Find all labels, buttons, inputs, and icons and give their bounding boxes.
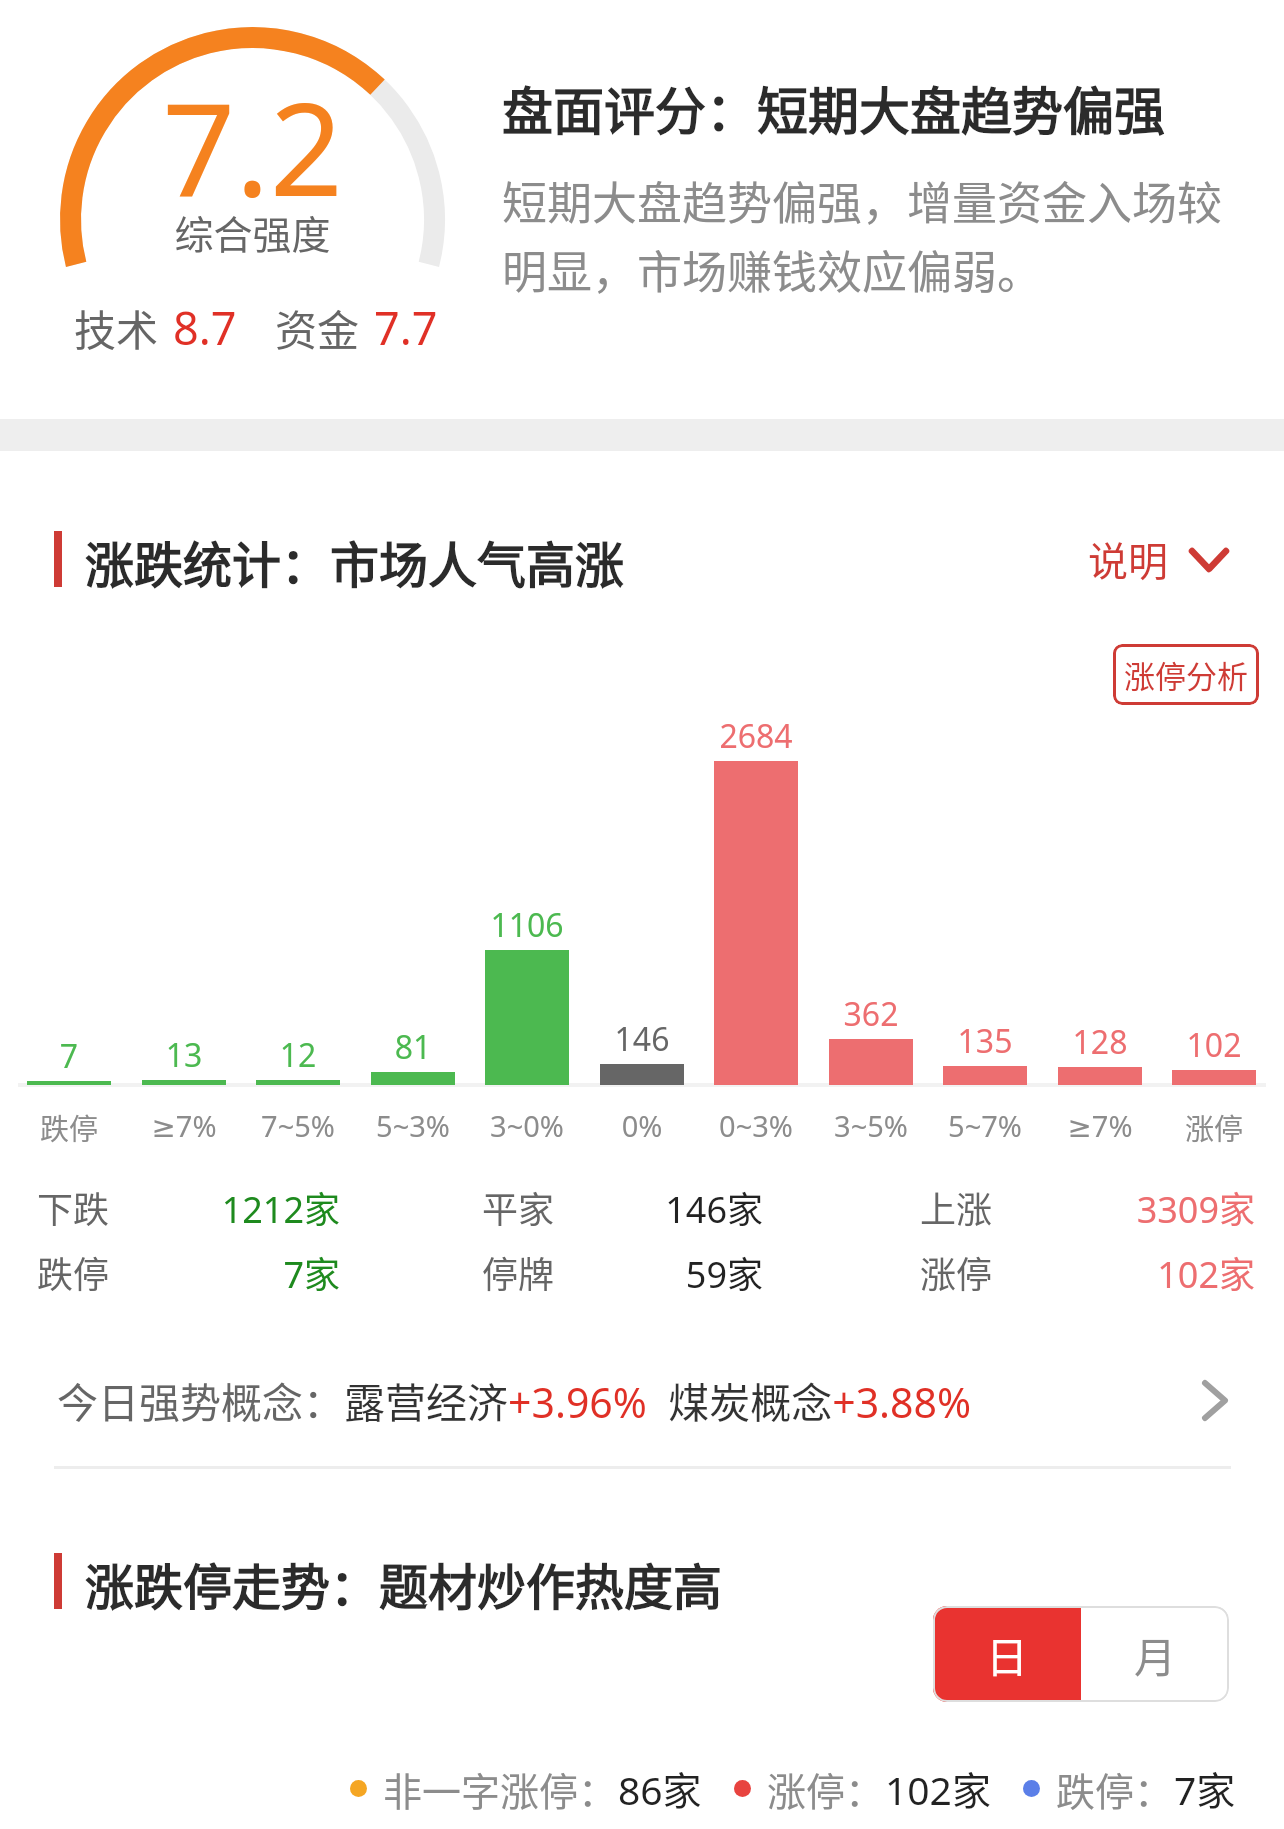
staticText: 102 <box>1142 1023 1284 1067</box>
staticText: 8.7 <box>173 297 237 358</box>
staticText: 涨停 <box>1142 1106 1284 1148</box>
staticText: 128 <box>1028 1020 1172 1064</box>
staticText: 13 <box>112 1033 256 1077</box>
staticText: 1106 <box>455 903 599 947</box>
staticText: 今日强势概念：露营经济+3.96% 煤炭概念+3.88% <box>57 1370 972 1430</box>
staticText: 2684 <box>684 714 828 758</box>
staticText: 综合强度 <box>60 204 445 260</box>
staticText: 说明 <box>1088 530 1168 588</box>
staticText: 月 <box>1134 1624 1177 1685</box>
staticText: 81 <box>341 1025 485 1069</box>
staticText: 短期大盘趋势偏强，增量资金入场较明显，市场赚钱效应偏弱。 <box>502 168 1242 302</box>
staticText: ≥7% <box>1028 1106 1172 1145</box>
staticText: 涨跌统计：市场人气高涨 <box>85 526 625 597</box>
staticText: 涨停 <box>920 1246 993 1298</box>
staticText: 7~5% <box>226 1106 370 1145</box>
staticText: 停牌 <box>482 1246 555 1298</box>
staticText: 86家 <box>618 1760 702 1817</box>
staticText: 362 <box>799 992 943 1036</box>
staticText: 146 <box>570 1017 714 1061</box>
staticText: 日 <box>986 1624 1029 1685</box>
button[interactable]: 今日强势概念：露营经济+3.96% 煤炭概念+3.88% <box>0 1344 1284 1456</box>
staticText: 0~3% <box>684 1106 828 1145</box>
other: 展开说明 <box>1188 528 1230 590</box>
staticText: 涨停： <box>767 1761 885 1817</box>
staticText: 1212家 <box>140 1181 340 1233</box>
staticText: 涨跌停走势：题材炒作热度高 <box>85 1548 723 1619</box>
staticText: 135 <box>913 1019 1057 1063</box>
staticText: ≥7% <box>112 1106 256 1145</box>
staticText: 146家 <box>600 1181 763 1233</box>
staticText: 跌停 <box>37 1246 110 1298</box>
staticText: 5~7% <box>913 1106 1057 1145</box>
staticText: 0% <box>570 1106 714 1145</box>
other: 查看更多概念 <box>1202 1380 1228 1421</box>
staticText: 7.7 <box>374 297 438 358</box>
staticText: 7家 <box>1174 1760 1236 1817</box>
staticText: 7.2 <box>60 59 445 233</box>
staticText: 59家 <box>600 1246 763 1298</box>
staticText: 7家 <box>140 1246 340 1298</box>
staticText: 资金 <box>275 297 360 358</box>
staticText: 102家 <box>1030 1246 1255 1298</box>
staticText: 下跌 <box>37 1181 110 1233</box>
staticText: 上涨 <box>920 1181 993 1233</box>
button[interactable]: 月 <box>1081 1606 1229 1702</box>
staticText: 5~3% <box>341 1106 485 1145</box>
staticText: 盘面评分：短期大盘趋势偏强 <box>502 71 1166 145</box>
staticText: 技术 <box>74 297 159 358</box>
staticText: 跌停 <box>0 1106 141 1148</box>
staticText: 7 <box>0 1034 141 1078</box>
button[interactable]: 说明 <box>1088 528 1230 590</box>
staticText: 12 <box>226 1033 370 1077</box>
button[interactable]: 涨停分析 <box>1113 644 1259 705</box>
staticText: 涨停分析 <box>1124 652 1248 697</box>
staticText: 3~5% <box>799 1106 943 1145</box>
button[interactable]: 日 <box>933 1606 1081 1702</box>
staticText: 102家 <box>885 1760 991 1817</box>
staticText: 非一字涨停： <box>383 1761 618 1817</box>
staticText: 跌停： <box>1056 1761 1174 1817</box>
staticText: 3~0% <box>455 1106 599 1145</box>
staticText: 3309家 <box>1030 1181 1255 1233</box>
staticText: 平家 <box>482 1181 555 1233</box>
